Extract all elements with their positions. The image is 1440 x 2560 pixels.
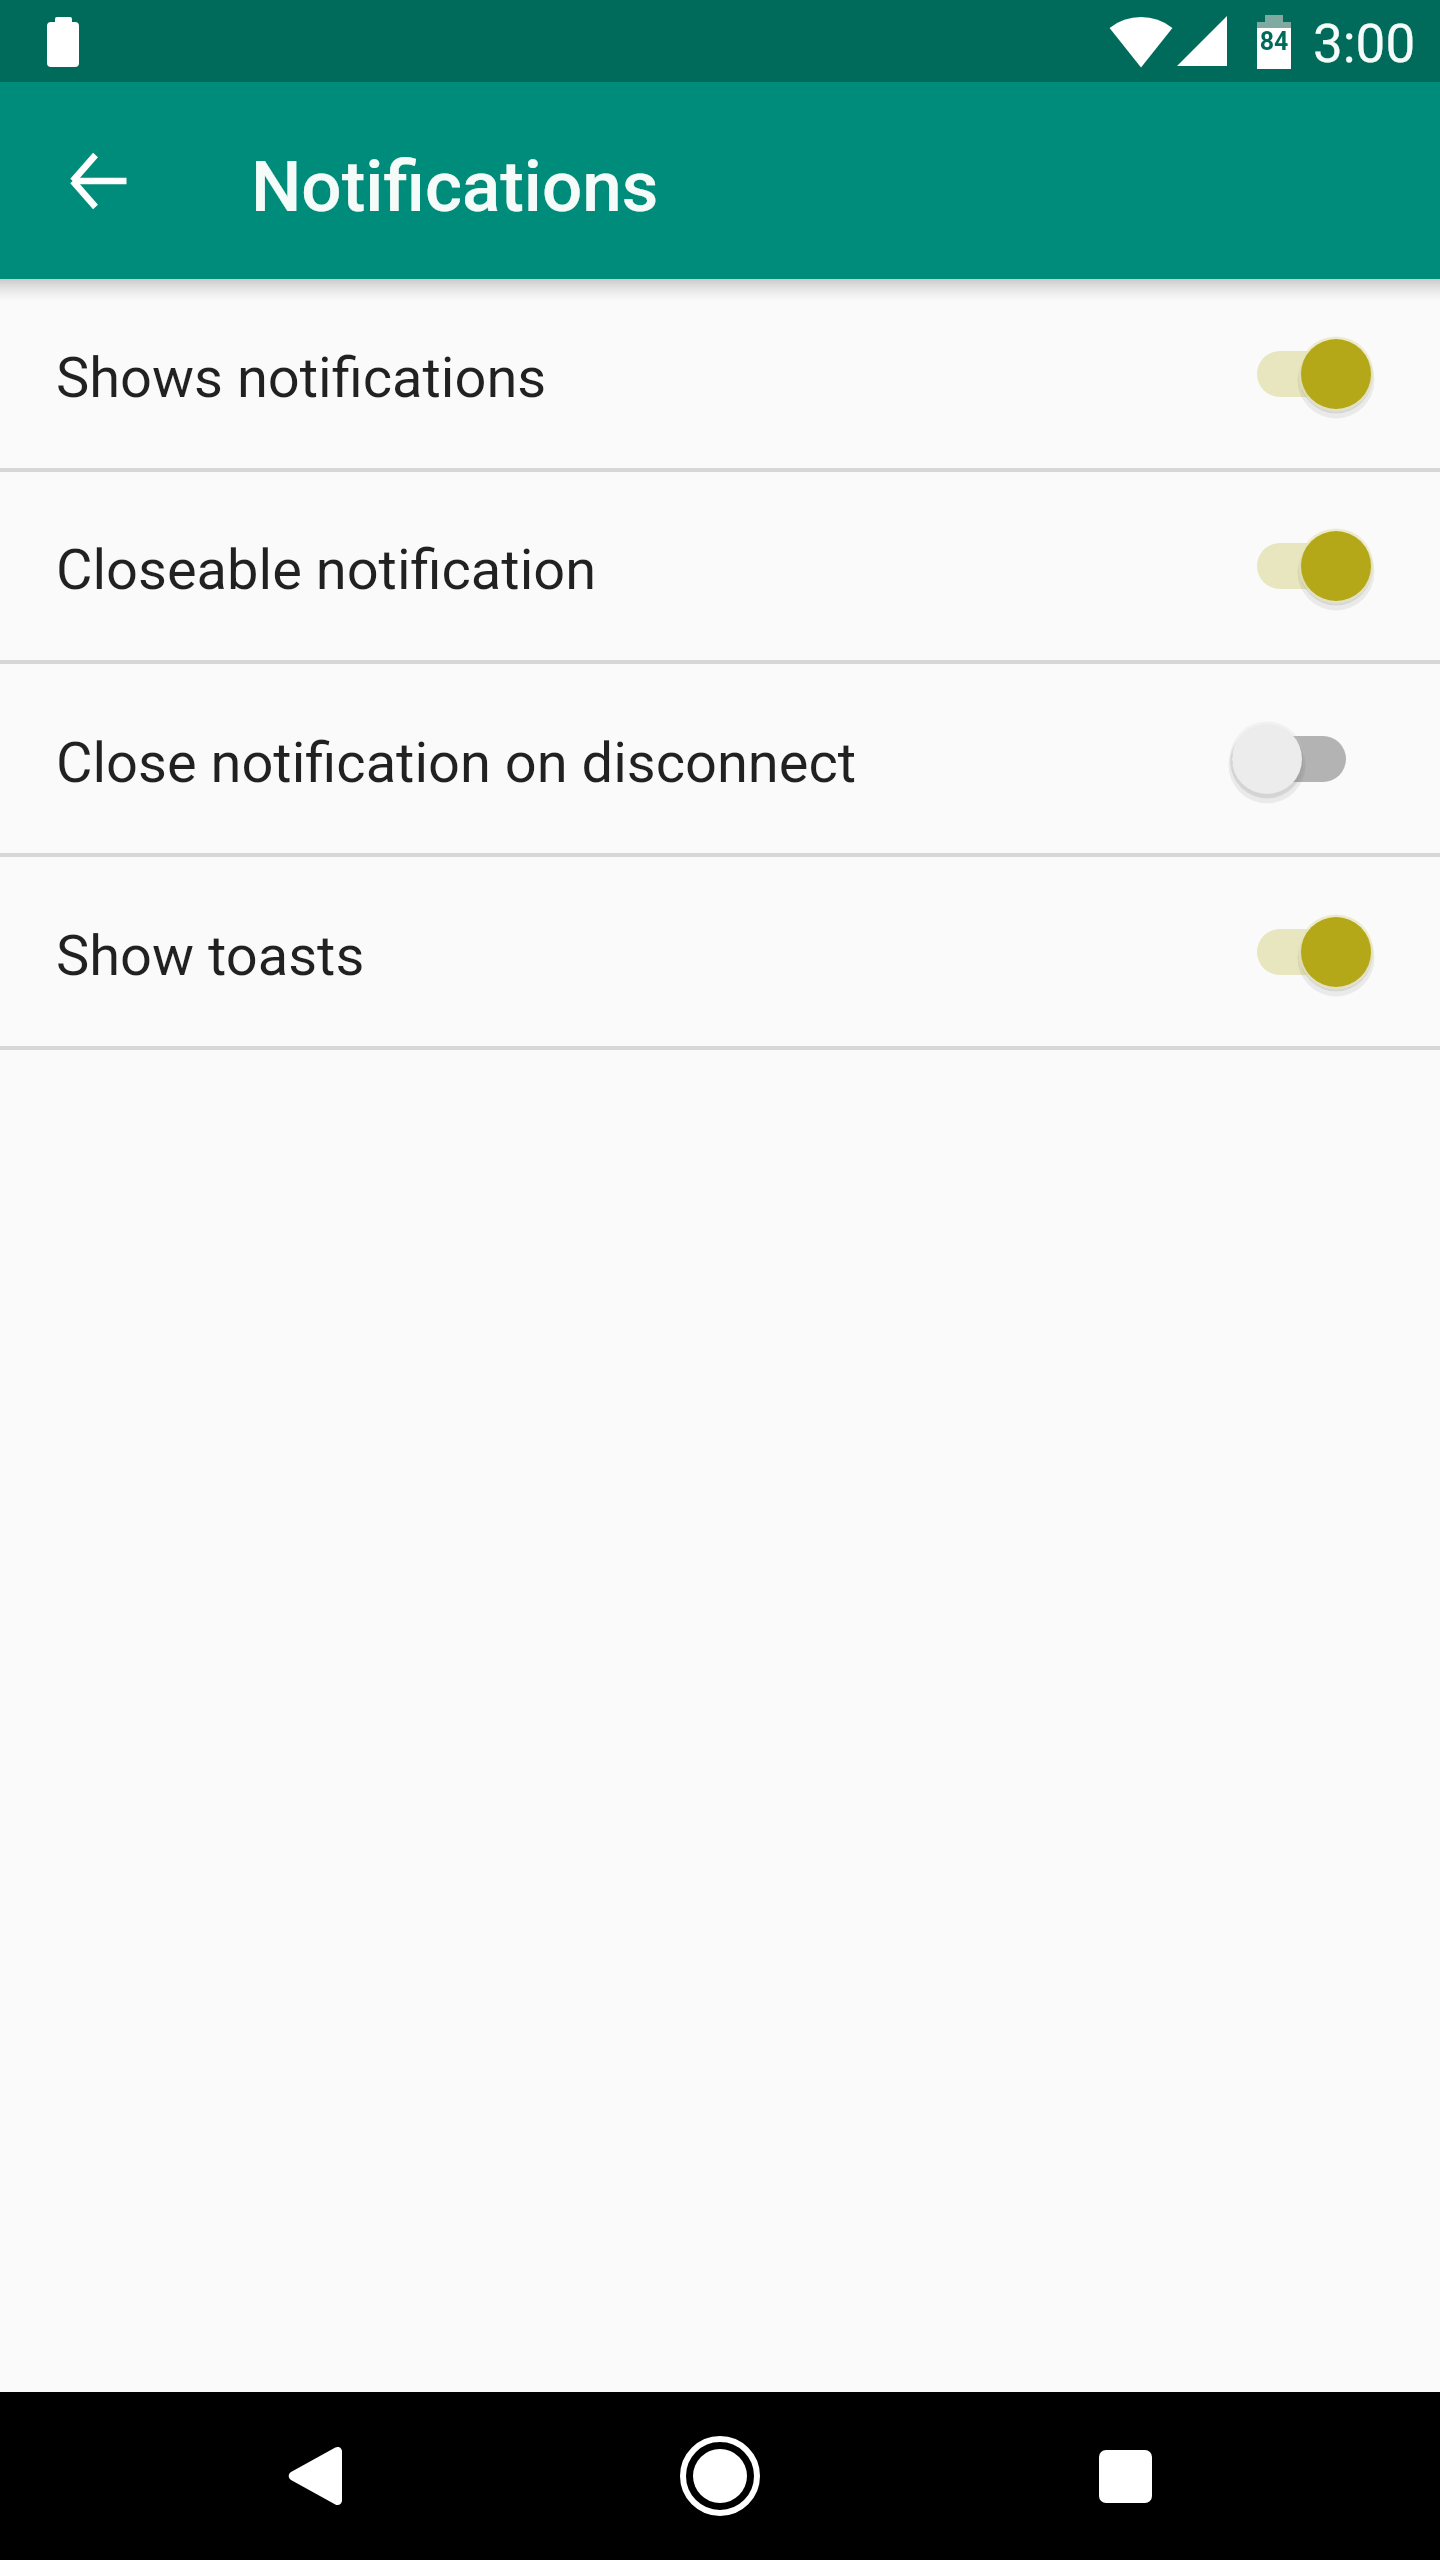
staticText: Closeable notification [56,537,597,603]
button[interactable]: Toggle Show toasts [1243,917,1385,987]
button[interactable]: Back [244,2406,384,2546]
button[interactable]: Show toasts [0,857,1440,1046]
button[interactable]: Toggle Shows notifications [1243,339,1385,409]
staticText: Close notification on disconnect [56,730,857,796]
staticText: Notifications [251,145,659,228]
button[interactable]: Toggle Close notification on disconnect [1243,724,1385,794]
button[interactable]: Back [38,121,158,241]
button[interactable]: Recents [1055,2406,1195,2546]
staticText: 3:00 [1313,13,1416,75]
button[interactable]: Shows notifications [0,279,1440,468]
button[interactable]: Toggle Closeable notification [1243,531,1385,601]
button[interactable]: Close notification on disconnect [0,664,1440,853]
staticText: Shows notifications [56,345,547,411]
staticText: Show toasts [56,923,365,989]
button[interactable]: Home [650,2406,790,2546]
button[interactable]: Closeable notification [0,472,1440,660]
staticText: 84 [1258,27,1290,56]
